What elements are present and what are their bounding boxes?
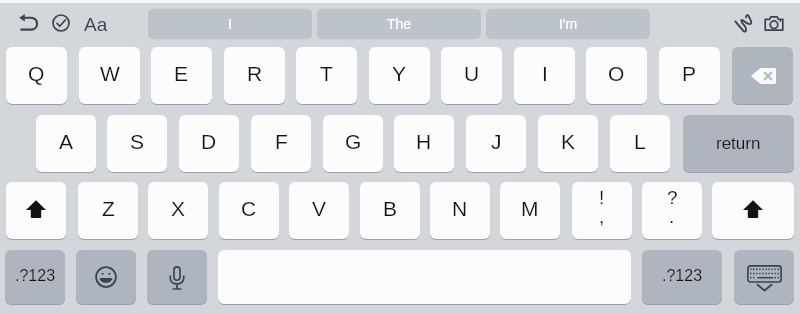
staticText: F <box>275 130 288 153</box>
staticText: T <box>320 62 333 85</box>
button[interactable]: Handwriting <box>735 15 752 32</box>
button[interactable]: Hide keyboard <box>734 250 794 304</box>
button[interactable]: T <box>296 47 357 104</box>
staticText: Aa <box>84 14 108 35</box>
staticText: Y <box>392 62 407 85</box>
staticText: S <box>130 130 145 153</box>
button[interactable]: C <box>219 182 279 239</box>
staticText: .?123 <box>15 267 56 285</box>
button[interactable]: Camera <box>764 16 784 31</box>
staticText: C <box>241 197 257 220</box>
staticText: .?123 <box>662 267 703 285</box>
button[interactable]: U <box>441 47 502 104</box>
staticText: ? <box>667 187 678 208</box>
staticText: W <box>100 62 120 85</box>
staticText: . <box>669 206 675 227</box>
button[interactable]: The <box>317 9 481 39</box>
button[interactable]: ? <box>642 182 702 239</box>
button[interactable]: Done <box>52 14 70 32</box>
staticText: E <box>174 62 189 85</box>
staticText: H <box>416 130 432 153</box>
button[interactable]: I <box>514 47 575 104</box>
button[interactable]: B <box>360 182 420 239</box>
button[interactable]: K <box>538 115 598 172</box>
staticText: U <box>464 62 480 85</box>
staticText: O <box>608 62 625 85</box>
button[interactable]: V <box>289 182 349 239</box>
staticText: G <box>345 130 362 153</box>
button[interactable]: L <box>610 115 670 172</box>
button[interactable]: Shift <box>6 182 66 239</box>
staticText: The <box>387 16 412 32</box>
staticText: I'm <box>559 16 578 32</box>
staticText: M <box>521 197 539 220</box>
staticText: ! <box>599 187 605 208</box>
button[interactable]: Backspace <box>732 47 793 104</box>
button[interactable]: R <box>224 47 285 104</box>
button[interactable]: G <box>323 115 383 172</box>
button[interactable]: Undo <box>18 14 38 31</box>
button[interactable]: .?123 <box>5 250 65 304</box>
button[interactable]: H <box>394 115 454 172</box>
staticText: Z <box>102 197 115 220</box>
button[interactable]: S <box>107 115 167 172</box>
staticText: L <box>634 130 646 153</box>
button[interactable]: J <box>466 115 526 172</box>
button[interactable]: F <box>251 115 311 172</box>
button[interactable]: A <box>36 115 96 172</box>
button[interactable]: M <box>500 182 560 239</box>
staticText: return <box>716 134 761 153</box>
button[interactable]: W <box>79 47 140 104</box>
button[interactable]: Y <box>369 47 430 104</box>
button[interactable]: I <box>148 9 312 39</box>
button[interactable]: P <box>659 47 720 104</box>
button[interactable]: X <box>148 182 208 239</box>
button[interactable]: I'm <box>486 9 650 39</box>
button[interactable]: D <box>179 115 239 172</box>
staticText: , <box>599 206 605 227</box>
button[interactable]: return <box>683 115 794 172</box>
staticText: P <box>682 62 697 85</box>
button[interactable]: Dictation <box>147 250 207 304</box>
button[interactable]: O <box>586 47 647 104</box>
staticText: N <box>452 197 468 220</box>
staticText: X <box>171 197 186 220</box>
staticText: D <box>201 130 217 153</box>
button[interactable]: Z <box>78 182 138 239</box>
button[interactable]: ! <box>572 182 632 239</box>
staticText: R <box>247 62 263 85</box>
button[interactable]: N <box>430 182 490 239</box>
staticText: I <box>542 62 548 85</box>
staticText: I <box>228 16 232 32</box>
staticText: A <box>59 130 74 153</box>
button[interactable]: .?123 <box>642 250 722 304</box>
button[interactable]: Emoji <box>76 250 136 304</box>
staticText: B <box>383 197 398 220</box>
button[interactable]: Q <box>6 47 67 104</box>
button[interactable]: E <box>151 47 212 104</box>
staticText: Q <box>28 62 45 85</box>
staticText: V <box>312 197 327 220</box>
staticText: J <box>491 130 502 153</box>
button[interactable]: Shift <box>712 182 794 239</box>
button[interactable]: Aa <box>84 9 112 39</box>
staticText: K <box>561 130 576 153</box>
